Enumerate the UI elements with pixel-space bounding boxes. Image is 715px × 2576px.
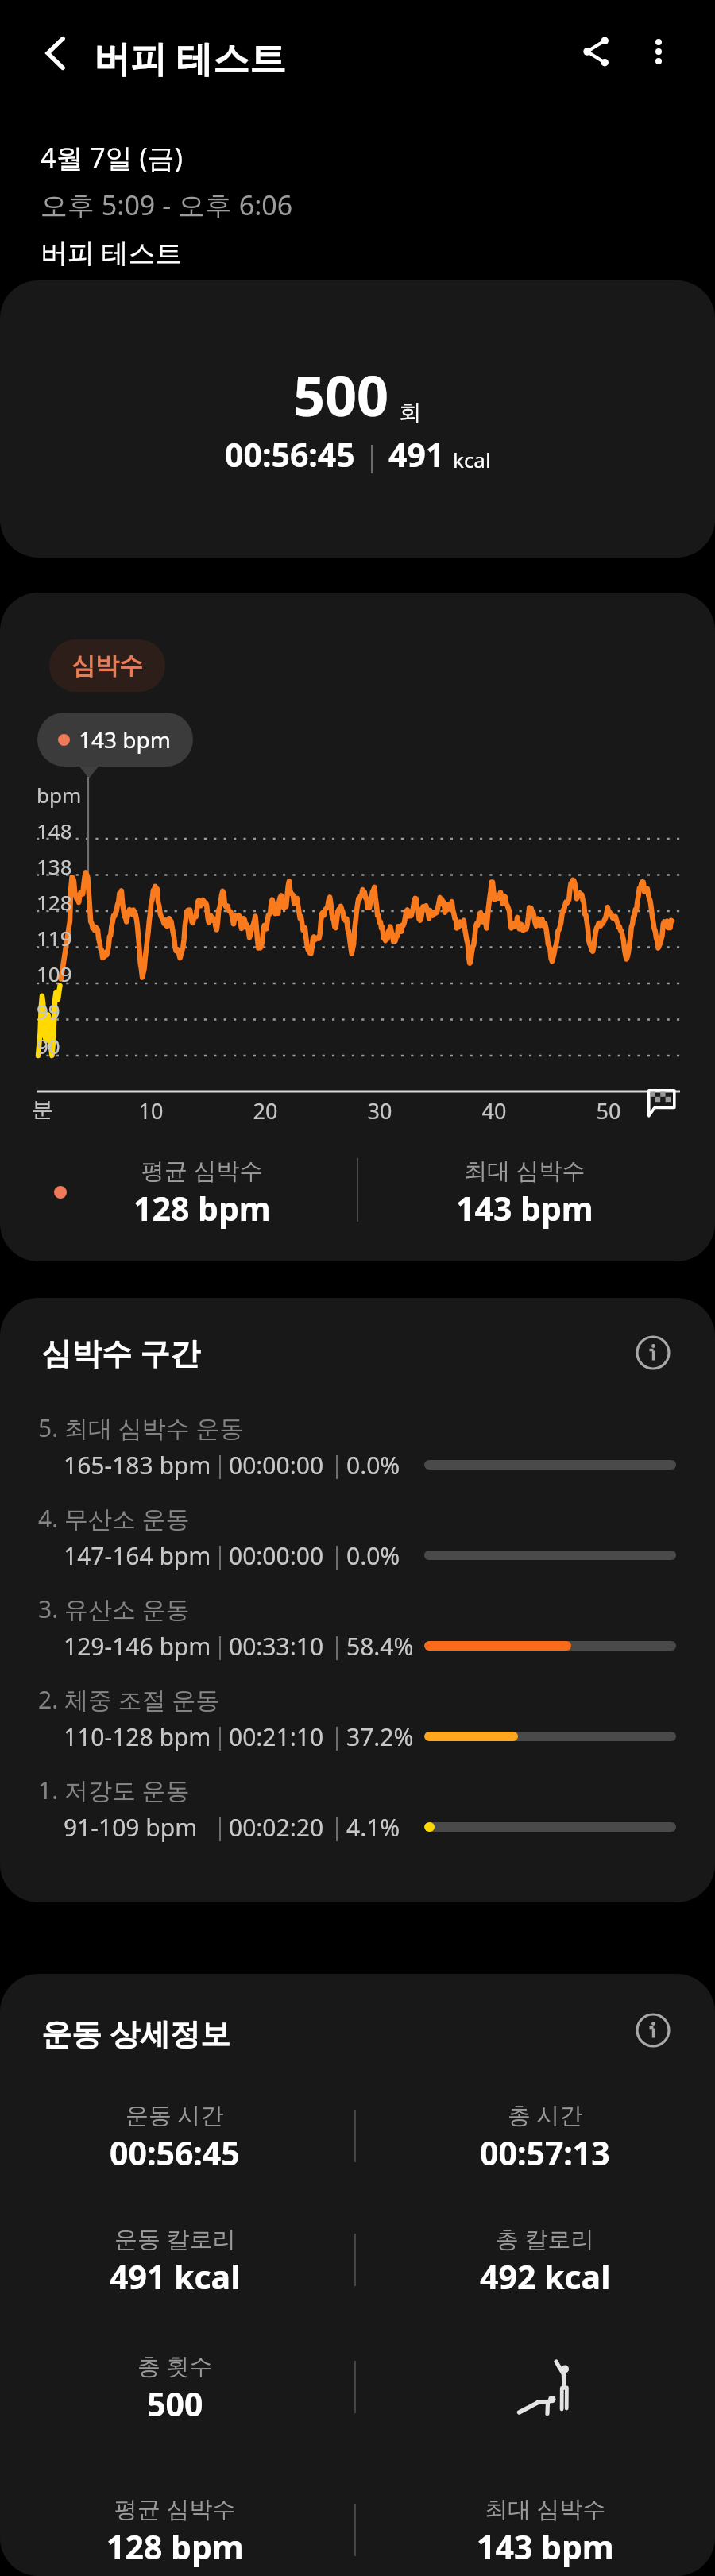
staticText: 500 (147, 2381, 203, 2426)
staticText: 버피 테스트 (41, 234, 183, 271)
staticText: 90 (37, 1032, 60, 1060)
staticText: 평균 심박수 (114, 2493, 236, 2524)
staticText: 0.0% (346, 1539, 400, 1572)
staticText: 143 bpm (79, 724, 171, 755)
staticText: 91-109 bpm (64, 1811, 198, 1844)
staticText: 4. 무산소 운동 (38, 1502, 190, 1535)
staticText: 평균 심박수 (141, 1154, 263, 1186)
staticText: 143 bpm (477, 2524, 614, 2569)
staticText: 운동 칼로리 (114, 2223, 236, 2254)
staticText: 138 (37, 852, 72, 880)
staticText: bpm (37, 781, 82, 809)
staticText: 58.4% (346, 1630, 414, 1663)
staticText: 1. 저강도 운동 (38, 1774, 190, 1806)
staticText: 분 (32, 1096, 53, 1123)
staticText: 심박수 구간 (41, 1331, 200, 1373)
staticText: 00:00:00 (229, 1539, 324, 1572)
staticText: 147-164 bpm (64, 1539, 211, 1572)
staticText: 심박수 (71, 651, 143, 681)
staticText: 10 (127, 1096, 175, 1126)
staticText: 2. 체중 조절 운동 (38, 1683, 220, 1716)
staticText: 50 (585, 1096, 632, 1126)
staticText: 20 (242, 1096, 289, 1126)
staticText: 40 (470, 1096, 518, 1126)
staticText: 128 bpm (133, 1186, 271, 1230)
staticText: 143 bpm (456, 1186, 593, 1230)
staticText: 오후 5:09 - 오후 6:06 (41, 187, 293, 223)
staticText: 37.2% (346, 1721, 414, 1753)
button[interactable]: Share (563, 18, 630, 85)
staticText: kcal (453, 446, 491, 473)
staticText: 총 칼로리 (496, 2223, 594, 2254)
staticText: 129-146 bpm (64, 1630, 211, 1663)
staticText: 128 (37, 888, 72, 916)
staticText: 운동 상세정보 (41, 2012, 230, 2053)
staticText: 148 (37, 817, 72, 844)
staticText: 최대 심박수 (485, 2493, 606, 2524)
staticText: 128 bpm (106, 2524, 244, 2569)
staticText: 491 (388, 432, 445, 477)
staticText: 00:56:45 (225, 432, 355, 477)
staticText: 165-183 bpm (64, 1449, 211, 1481)
staticText: 30 (356, 1096, 404, 1126)
staticText: 4월 7일 (금) (41, 139, 183, 176)
staticText: 00:56:45 (110, 2130, 240, 2175)
staticText: 회 (399, 398, 422, 427)
button[interactable]: Info (626, 2003, 680, 2057)
staticText: 총 시간 (508, 2099, 583, 2130)
staticText: 총 횟수 (137, 2350, 213, 2381)
staticText: 최대 심박수 (464, 1154, 586, 1186)
staticText: 운동 시간 (126, 2099, 224, 2130)
staticText: 109 (37, 960, 72, 987)
button[interactable]: 심박수 (49, 639, 165, 692)
staticText: 492 kcal (480, 2254, 611, 2299)
staticText: 5. 최대 심박수 운동 (38, 1412, 244, 1444)
staticText: 0.0% (346, 1449, 400, 1481)
staticText: 00:21:10 (229, 1721, 324, 1753)
staticText: 00:00:00 (229, 1449, 324, 1481)
staticText: 00:02:20 (229, 1811, 324, 1844)
staticText: 00:57:13 (480, 2130, 610, 2175)
staticText: 3. 유산소 운동 (38, 1593, 190, 1625)
staticText: 491 kcal (110, 2254, 241, 2299)
staticText: 버피 테스트 (94, 33, 286, 83)
staticText: 99 (37, 997, 60, 1025)
button[interactable]: Back (24, 23, 84, 83)
staticText: 119 (37, 924, 72, 952)
button[interactable]: Info (626, 1326, 680, 1380)
staticText: 4.1% (346, 1811, 400, 1844)
staticText: 500 (293, 357, 389, 432)
staticText: 110-128 bpm (64, 1721, 211, 1753)
staticText: 00:33:10 (229, 1630, 324, 1663)
button[interactable]: More options (625, 18, 692, 85)
